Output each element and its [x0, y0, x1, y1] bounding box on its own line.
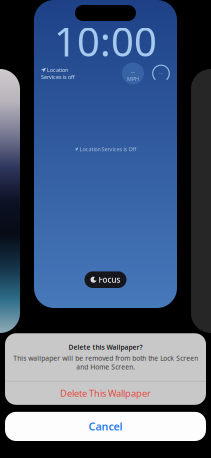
- staticText: Delete this Wallpaper?: [68, 343, 142, 352]
- button[interactable]: Previous wallpaper: [34, 0, 177, 264]
- staticText: --: [131, 68, 135, 75]
- button[interactable]: Next wallpaper: [34, 0, 177, 264]
- staticText: 10:00: [54, 14, 157, 67]
- button[interactable]: Focus: [84, 271, 126, 288]
- button[interactable]: Cancel: [5, 412, 206, 441]
- staticText: MPH: [127, 75, 139, 83]
- staticText: Cancel: [88, 419, 122, 433]
- staticText: Location: [47, 66, 68, 73]
- staticText: This wallpaper will be removed from both…: [13, 354, 198, 371]
- staticText: Services is off: [41, 73, 75, 81]
- staticText: Delete This Wallpaper: [60, 387, 151, 399]
- staticText: Focus: [98, 274, 120, 285]
- staticText: --: [159, 69, 163, 76]
- staticText: Location Services is Off: [79, 146, 136, 153]
- button[interactable]: Delete This Wallpaper: [5, 381, 206, 405]
